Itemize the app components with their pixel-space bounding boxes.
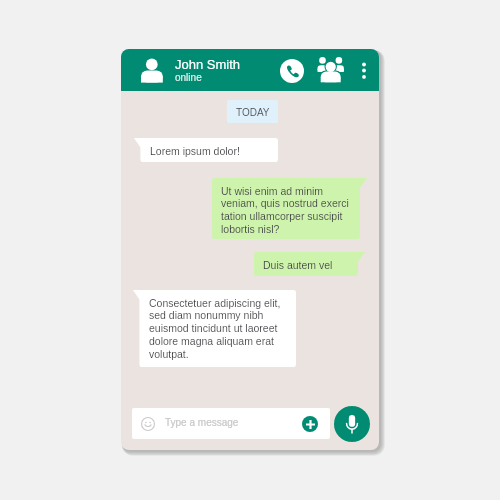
button[interactable]: Consectetuer adipiscing elit, sed diam n… <box>133 290 296 367</box>
button[interactable]: Type a message <box>132 408 330 439</box>
staticText: Ut wisi enim ad minim veniam, quis nostr… <box>221 185 349 235</box>
staticText: Lorem ipsum dolor! <box>150 145 240 157</box>
staticText: John Smith <box>175 57 241 72</box>
button[interactable]: Lorem ipsum dolor! <box>134 138 278 162</box>
button[interactable]: More options <box>356 57 372 83</box>
staticText: TODAY <box>236 107 270 118</box>
button[interactable]: Group members <box>317 57 346 83</box>
button[interactable]: TODAY <box>227 100 278 123</box>
staticText: online <box>175 72 202 83</box>
button[interactable]: Attach <box>302 416 318 432</box>
button[interactable]: Call <box>280 59 304 83</box>
staticText: Consectetuer adipiscing elit, sed diam n… <box>149 297 281 360</box>
button[interactable]: Duis autem vel <box>254 252 365 276</box>
button[interactable]: Contact avatar <box>138 54 166 84</box>
staticText: Duis autem vel <box>263 259 333 271</box>
button[interactable]: Record voice message <box>334 406 370 442</box>
button[interactable]: Ut wisi enim ad minim veniam, quis nostr… <box>212 178 367 239</box>
staticText: Type a message <box>165 417 239 428</box>
